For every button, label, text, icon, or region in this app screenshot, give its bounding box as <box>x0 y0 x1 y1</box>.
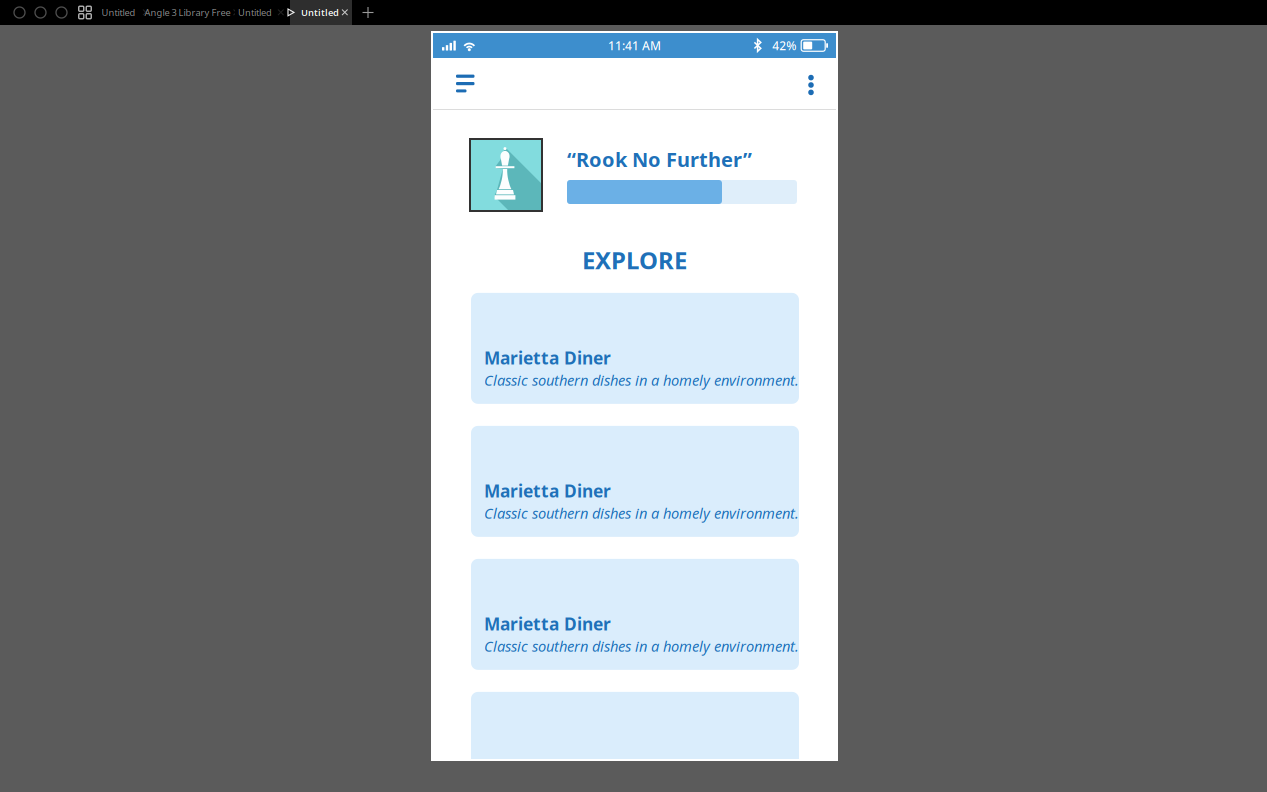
staticText: 42% <box>772 37 796 53</box>
button[interactable]: Marietta Diner <box>471 426 799 537</box>
button[interactable]: New tab <box>352 0 384 25</box>
staticText: 11:41 AM <box>608 37 661 53</box>
staticText: Untitled <box>238 6 272 19</box>
button[interactable]: Untitled <box>235 0 290 25</box>
button[interactable]: Zoom window <box>56 7 67 18</box>
button[interactable]: Angle 3 Library Free <box>155 0 235 25</box>
button[interactable]: Marietta Diner <box>471 559 799 670</box>
staticText: Untitled <box>101 6 135 19</box>
staticText: Classic southern dishes in a homely envi… <box>484 370 799 390</box>
button[interactable]: More options <box>784 56 836 110</box>
button[interactable] <box>471 692 799 792</box>
staticText: Classic southern dishes in a homely envi… <box>484 503 799 523</box>
staticText: Angle 3 Library Free <box>144 6 230 19</box>
staticText: Classic southern dishes in a homely envi… <box>484 636 799 656</box>
staticText: Untitled <box>301 6 339 19</box>
button[interactable]: Marietta Diner <box>471 293 799 404</box>
button[interactable]: Close window <box>14 7 25 18</box>
staticText: EXPLORE <box>582 244 687 276</box>
button[interactable]: Untitled <box>97 0 155 25</box>
button[interactable]: Tab overview <box>73 0 97 25</box>
button[interactable]: Minimise window <box>35 7 46 18</box>
button[interactable]: Menu <box>433 58 502 109</box>
button[interactable]: Untitled <box>290 0 352 25</box>
staticText: Marietta Diner <box>484 612 611 635</box>
staticText: Marietta Diner <box>484 346 611 369</box>
staticText: “Rook No Further” <box>567 146 752 173</box>
staticText: Marietta Diner <box>484 479 611 502</box>
